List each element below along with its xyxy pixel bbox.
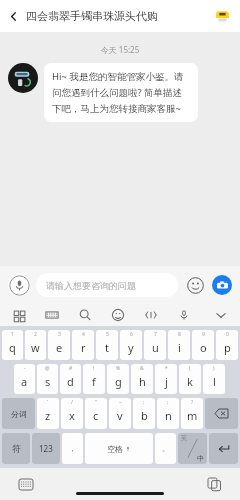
button[interactable]: 9 [192,330,214,360]
staticText: k [187,374,193,389]
staticText: 请输入想要咨询的问题 [46,280,136,291]
button[interactable]: ? [181,398,203,429]
button[interactable]: Switch English Chinese [178,433,207,464]
staticText: f [92,374,96,389]
button[interactable]: Voice input [8,274,30,296]
staticText: z [45,408,51,423]
button[interactable]: 6 [120,330,142,360]
staticText: Hi~ 我是您的智能管家小鉴。请问您遇到什么问题啦? 简单描述下吧，马上为您转接… [52,70,190,115]
staticText: l [213,374,216,389]
staticText: ， [69,444,76,453]
button[interactable]: ) [203,364,225,394]
staticText: 中 [197,454,204,463]
staticText: h [139,374,146,389]
staticText: 5 [106,331,109,338]
staticText: p [224,340,231,355]
button[interactable]: Search [77,307,93,323]
button[interactable]: Hide keyboard [213,307,229,323]
staticText: # [69,365,73,372]
button[interactable]: Emoji [185,275,205,295]
button[interactable]: / [61,398,83,429]
staticText: & [140,365,144,372]
button[interactable]: 空格 [85,433,153,464]
button[interactable]: 1 [2,330,23,360]
button[interactable]: Voice [176,307,192,323]
button[interactable]: 4 [72,330,94,360]
button[interactable]: ! [83,364,105,394]
staticText: a [21,374,28,389]
button[interactable]: Camera [212,275,232,295]
staticText: * [165,365,168,372]
staticText: d [67,374,74,389]
button[interactable]: 7 [144,330,166,360]
button[interactable]: 5 [96,330,118,360]
button[interactable]: ` [37,398,59,429]
button[interactable]: % [107,364,129,394]
staticText: 符 [12,443,21,454]
button[interactable]: # [60,364,81,394]
staticText: u [152,340,159,355]
staticText: ` [47,399,49,406]
staticText: v [117,408,123,423]
staticText: ) [213,365,215,372]
staticText: 4 [82,331,85,338]
staticText: 英 [181,434,187,442]
button[interactable]: Backspace [205,398,238,429]
staticText: c [93,408,99,423]
button[interactable]: Hi~ 我是您的智能管家小鉴。请问您遇到什么问题啦? 简单描述下吧，马上为您转接… [44,63,198,122]
button[interactable]: " [85,398,107,429]
staticText: 。 [162,444,169,453]
button[interactable]: Clipboard [205,475,223,493]
button[interactable]: ; [157,398,179,429]
staticText: 3 [58,331,61,338]
button[interactable]: Emoticons [110,307,126,323]
button[interactable]: Assistant avatar [8,63,38,93]
button[interactable]: 8 [168,330,190,360]
button[interactable]: * [155,364,177,394]
button[interactable]: Translate [143,307,159,323]
button[interactable]: ， [62,433,83,464]
button[interactable]: 请输入想要咨询的问题 [36,273,178,297]
button[interactable]: Handwriting keyboard [44,307,60,323]
button[interactable]: Enter [209,433,238,464]
staticText: 今天 15:25 [0,44,240,55]
button[interactable]: Panel [11,307,27,323]
staticText: g [115,374,122,389]
button[interactable]: : [133,398,155,429]
button[interactable]: ~ [109,398,131,429]
button[interactable]: ( [179,364,201,394]
staticText: 123 [39,443,53,454]
staticText: t [105,340,109,355]
button[interactable]: Shop profile [215,9,229,23]
staticText: 9 [202,331,205,338]
button[interactable]: 符 [2,433,30,464]
staticText: ( [189,365,191,372]
staticText: y [128,340,134,355]
staticText: s [45,374,51,389]
staticText: m [187,408,198,423]
staticText: x [69,408,75,423]
staticText: 分词 [11,409,27,419]
button[interactable]: @ [37,364,58,394]
button[interactable]: 3 [48,330,70,360]
button[interactable]: 。 [155,433,176,464]
staticText: 空格 [107,444,123,454]
staticText: i [178,340,181,355]
staticText: ! [93,365,95,372]
button[interactable]: & [131,364,153,394]
staticText: ? [191,399,194,406]
button[interactable]: 0 [216,330,238,360]
staticText: 8 [178,331,181,338]
button[interactable]: 分词 [2,398,35,429]
button[interactable]: 123 [32,433,60,464]
staticText: w [31,340,40,355]
button[interactable]: Back [0,3,26,29]
staticText: 0 [226,331,229,338]
button[interactable]: Switch input method [17,475,35,493]
staticText: / [71,399,73,406]
staticText: n [165,408,172,423]
staticText: 6 [130,331,133,338]
button[interactable]: - [14,364,35,394]
button[interactable]: 2 [25,330,46,360]
staticText: b [141,408,148,423]
